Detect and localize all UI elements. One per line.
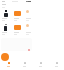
button[interactable]: Promotion banner: [1, 38, 32, 51]
button[interactable]: Product: [26, 24, 29, 27]
button[interactable]: Profile: [48, 61, 64, 70]
button[interactable]: Product: [26, 10, 29, 13]
button[interactable]: Search: [16, 61, 32, 70]
button[interactable]: Home: [0, 61, 16, 70]
button[interactable]: Product: [3, 10, 8, 17]
button[interactable]: Product: [14, 11, 21, 16]
button[interactable]: Product: [3, 24, 8, 31]
button[interactable]: Cart: [32, 61, 48, 70]
button[interactable]: Product: [14, 25, 21, 30]
button[interactable]: Add: [1, 53, 9, 61]
